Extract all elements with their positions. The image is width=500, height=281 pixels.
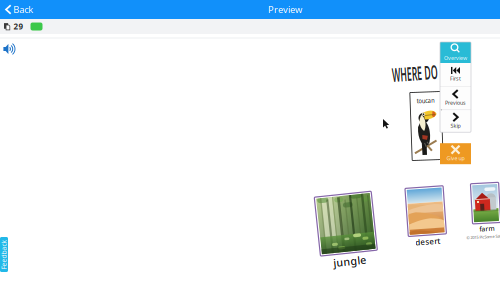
button[interactable]: Previous <box>440 87 471 110</box>
button[interactable]: farm <box>465 183 500 239</box>
button[interactable]: Give up <box>440 143 471 164</box>
button[interactable]: First <box>440 63 471 86</box>
staticText: desert <box>414 236 439 247</box>
staticText: toucan <box>416 96 437 105</box>
staticText: Skip <box>450 122 460 129</box>
button[interactable]: Skip <box>440 110 471 132</box>
staticText: Feedback <box>0 250 19 259</box>
staticText: Previous <box>445 99 466 106</box>
button[interactable]: desert <box>407 187 445 247</box>
button[interactable]: Back <box>0 0 39 19</box>
button[interactable]: Cards remaining <box>4 21 23 32</box>
staticText: Preview <box>268 3 302 16</box>
button[interactable]: Overview <box>440 42 471 63</box>
staticText: Overview <box>444 54 467 62</box>
button[interactable]: jungle <box>318 194 375 268</box>
staticText: First <box>450 75 461 82</box>
staticText: Back <box>13 3 33 16</box>
button[interactable]: Feedback <box>0 237 8 272</box>
staticText: jungle <box>330 254 363 268</box>
staticText: 29 <box>13 21 23 32</box>
staticText: © 2015 PicSome Satellite <box>465 234 500 239</box>
staticText: WHERE DO I <box>391 62 477 81</box>
staticText: farm <box>478 224 493 233</box>
button[interactable]: Play audio <box>1 40 19 58</box>
staticText: Give up <box>446 155 464 162</box>
